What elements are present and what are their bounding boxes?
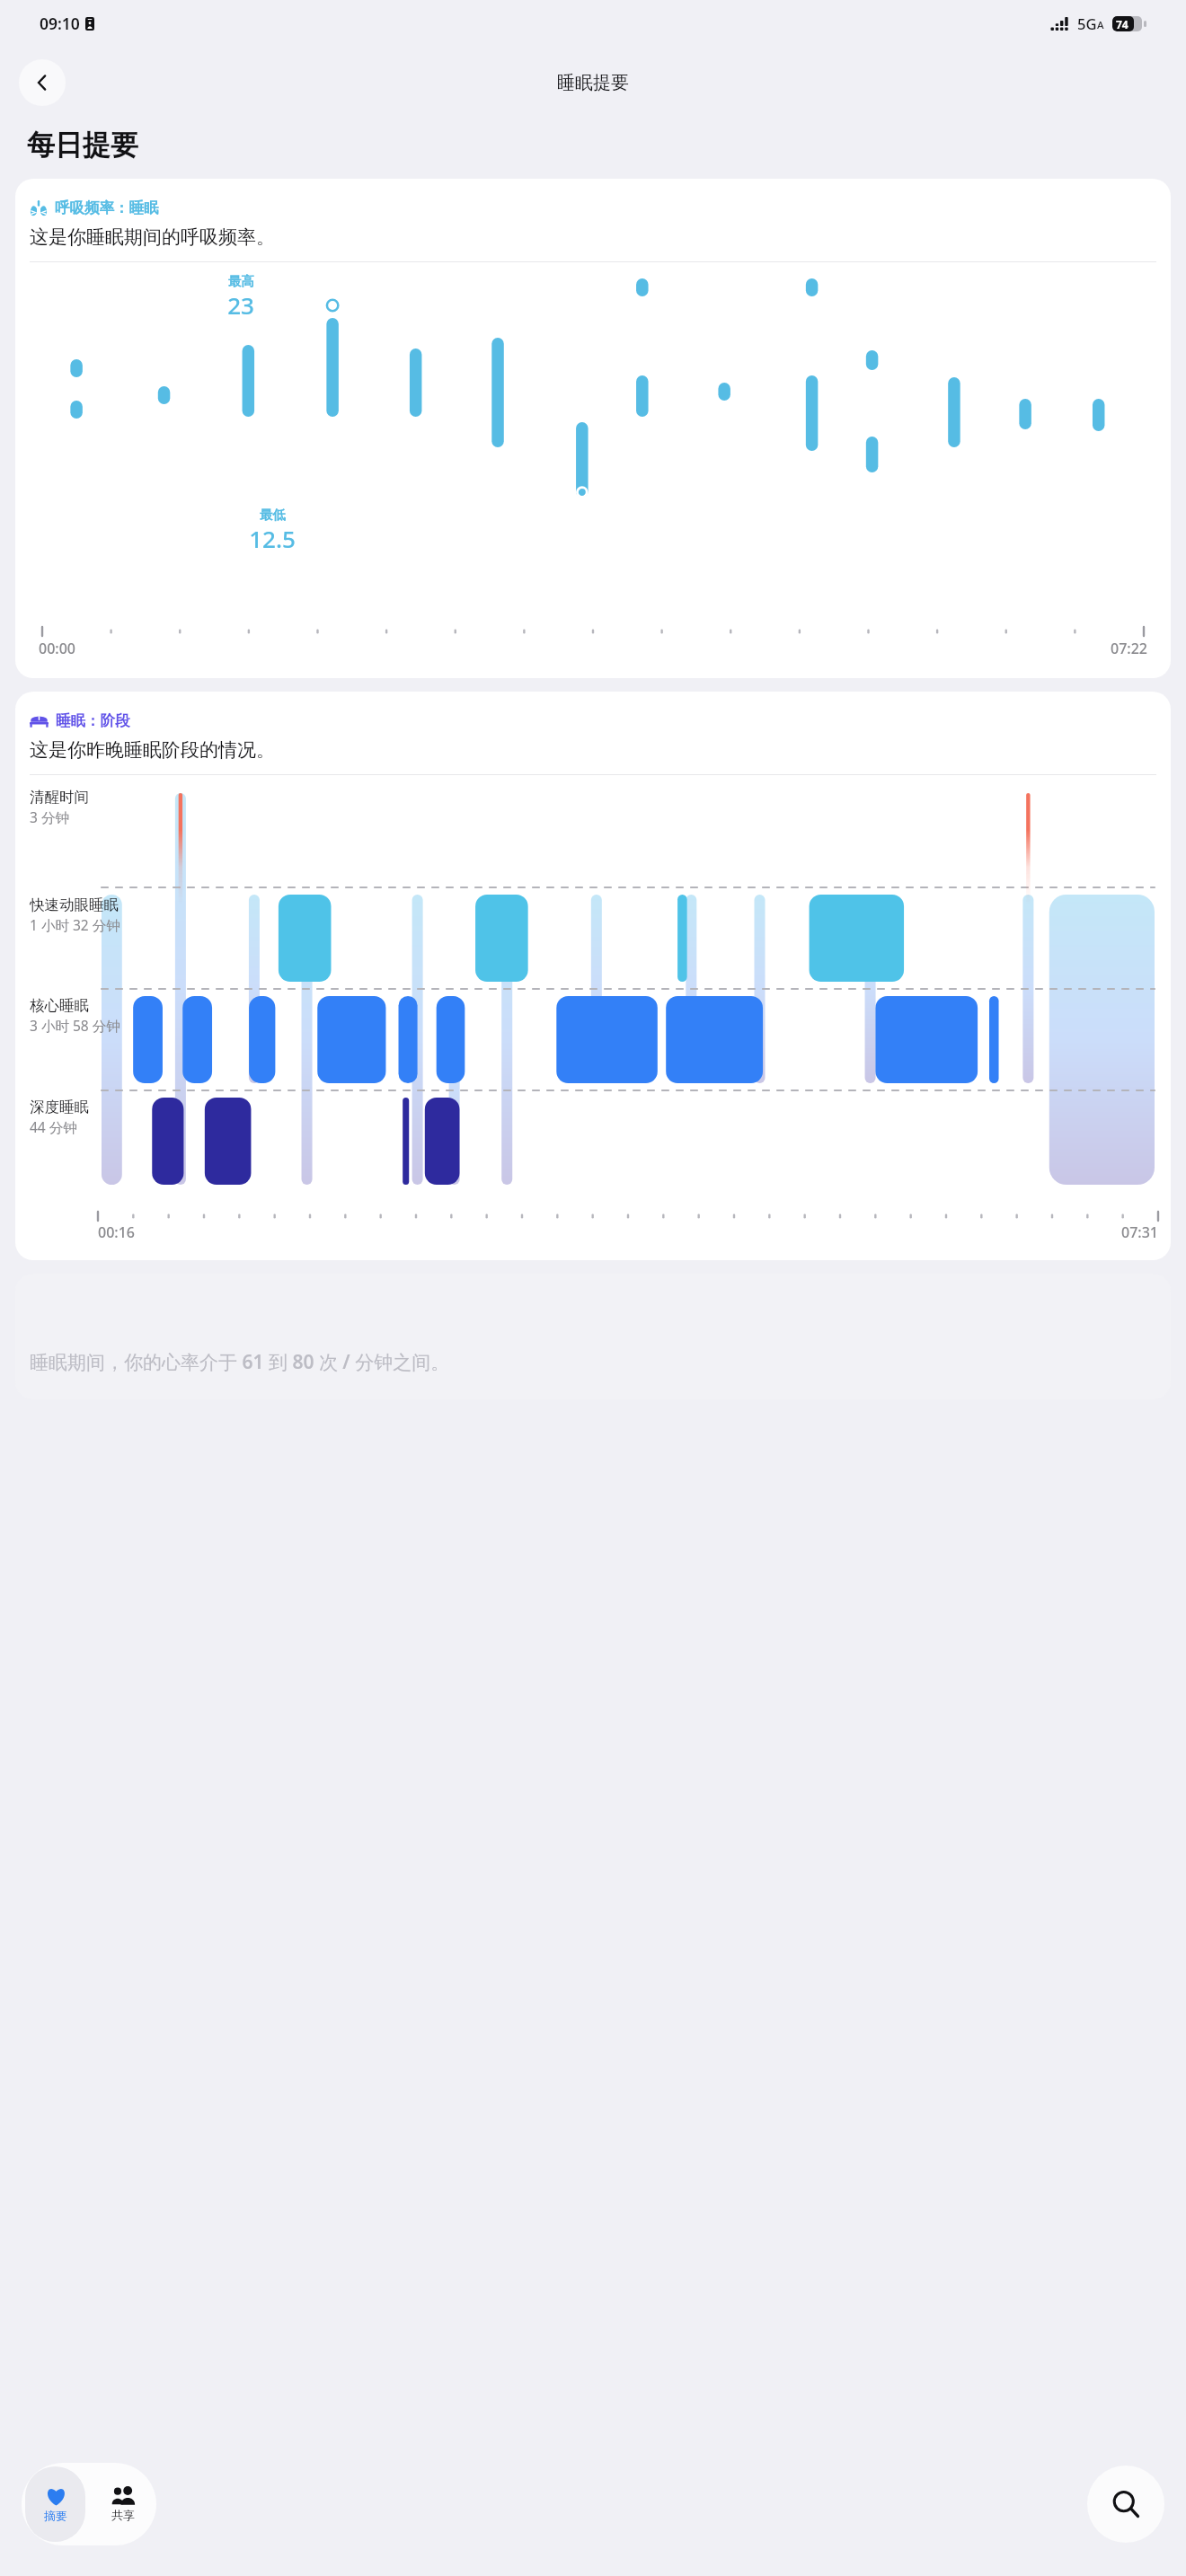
staticText: 07:31: [1121, 1222, 1158, 1242]
button[interactable]: 呼吸频率：睡眠: [15, 179, 1171, 678]
staticText: 1 小时 32 分钟: [30, 915, 120, 934]
staticText: A: [1097, 18, 1104, 32]
staticText: 这是你昨晚睡眠阶段的情况。: [30, 738, 275, 762]
button[interactable]: 摘要: [25, 2466, 85, 2542]
staticText: 12.5: [249, 523, 296, 554]
staticText: 最高: [228, 273, 254, 289]
staticText: 清醒时间: [30, 788, 89, 807]
staticText: 摘要: [44, 2509, 67, 2523]
staticText: 核心睡眠: [30, 996, 89, 1015]
staticText: 09:10: [40, 13, 80, 34]
button[interactable]: Back: [19, 59, 66, 106]
staticText: 呼吸频率：睡眠: [55, 198, 159, 217]
button[interactable]: 共享: [89, 2463, 156, 2545]
staticText: 44 分钟: [30, 1117, 77, 1136]
staticText: 3 分钟: [30, 807, 69, 826]
staticText: 睡眠提要: [557, 72, 629, 94]
staticText: 共享: [111, 2508, 135, 2522]
button[interactable]: 睡眠：阶段: [15, 692, 1171, 1260]
staticText: 每日提要: [27, 128, 138, 163]
staticText: 5G: [1077, 13, 1097, 33]
staticText: 这是你睡眠期间的呼吸频率。: [30, 225, 275, 249]
staticText: 深度睡眠: [30, 1098, 89, 1116]
staticText: 快速动眼睡眠: [30, 895, 119, 914]
staticText: 睡眠：阶段: [56, 711, 130, 730]
staticText: 23: [227, 289, 254, 321]
staticText: 00:00: [39, 639, 75, 658]
staticText: 最低: [260, 507, 286, 523]
staticText: 00:16: [98, 1222, 135, 1242]
staticText: 3 小时 58 分钟: [30, 1016, 120, 1035]
staticText: 睡眠期间，你的心率介于 61 到 80 次 / 分钟之间。: [30, 1349, 450, 1375]
staticText: 74: [1116, 17, 1128, 31]
staticText: 07:22: [1111, 639, 1147, 658]
button[interactable]: Search: [1087, 2466, 1164, 2543]
button[interactable]: 睡眠期间，你的心率介于 61 到 80 次 / 分钟之间。: [15, 1274, 1171, 1399]
